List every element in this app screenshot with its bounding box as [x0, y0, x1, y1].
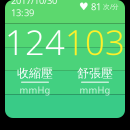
staticText: mmHg [79, 84, 110, 96]
staticText: 2017/10/30 13:39 [11, 0, 57, 19]
staticText: 103 [65, 19, 125, 65]
button[interactable]: 124 [5, 19, 65, 96]
staticText: 舒張壓 [77, 66, 113, 81]
staticText: mmHg [19, 84, 50, 96]
staticText: ♥ [79, 0, 89, 13]
staticText: 次/分 [103, 2, 119, 11]
staticText: 124 [5, 19, 65, 65]
button[interactable]: 103 [65, 19, 125, 96]
staticText: 81 [91, 0, 101, 13]
staticText: 收縮壓 [17, 66, 53, 81]
